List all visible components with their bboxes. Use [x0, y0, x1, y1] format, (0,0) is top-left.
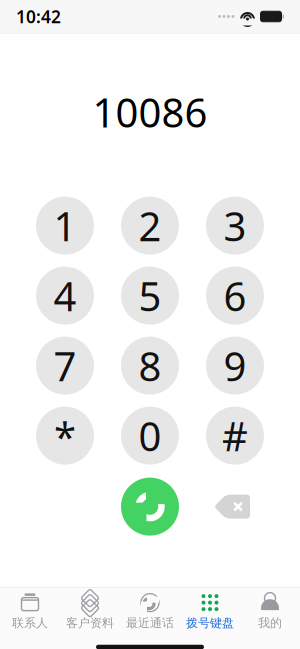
- staticText: 7: [53, 339, 76, 392]
- button[interactable]: 8: [121, 337, 179, 395]
- button[interactable]: Call: [121, 478, 179, 536]
- button[interactable]: 最近通话: [120, 587, 180, 634]
- staticText: 10:42: [16, 5, 61, 28]
- button[interactable]: 5: [121, 267, 179, 325]
- button[interactable]: 1: [36, 197, 94, 255]
- staticText: #: [222, 409, 248, 462]
- button[interactable]: 0: [121, 407, 179, 465]
- staticText: 9: [223, 339, 246, 392]
- staticText: 1: [53, 199, 76, 252]
- button[interactable]: 6: [206, 267, 264, 325]
- button[interactable]: 联系人: [0, 587, 60, 634]
- staticText: 最近通话: [126, 616, 174, 630]
- button[interactable]: *: [36, 407, 94, 465]
- button[interactable]: 3: [206, 197, 264, 255]
- button[interactable]: 7: [36, 337, 94, 395]
- staticText: 3: [223, 199, 246, 252]
- staticText: 8: [138, 339, 161, 392]
- staticText: *: [54, 409, 76, 462]
- button[interactable]: 客户资料: [60, 587, 120, 634]
- button[interactable]: 9: [206, 337, 264, 395]
- button[interactable]: Delete: [206, 478, 264, 536]
- staticText: 联系人: [12, 616, 48, 630]
- staticText: 4: [53, 269, 76, 322]
- staticText: 客户资料: [66, 616, 114, 630]
- staticText: 5: [138, 269, 161, 322]
- staticText: 0: [138, 409, 161, 462]
- staticText: 拨号键盘: [186, 616, 234, 630]
- button[interactable]: 拨号键盘: [180, 587, 240, 634]
- button[interactable]: #: [206, 407, 264, 465]
- staticText: 我的: [258, 616, 282, 630]
- button[interactable]: 2: [121, 197, 179, 255]
- button[interactable]: 我的: [240, 587, 300, 634]
- button[interactable]: 4: [36, 267, 94, 325]
- staticText: 10086: [92, 85, 207, 139]
- staticText: 2: [138, 199, 161, 252]
- staticText: 6: [223, 269, 246, 322]
